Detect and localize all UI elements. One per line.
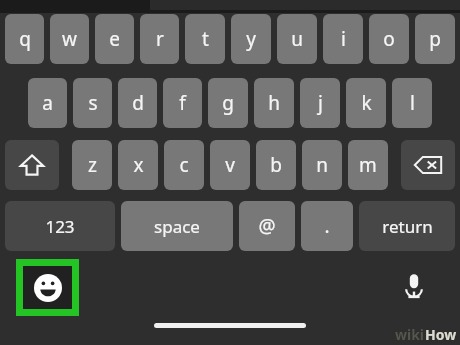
staticText: k <box>361 90 372 116</box>
staticText: h <box>268 90 280 116</box>
button[interactable]: Shift <box>5 140 59 190</box>
staticText: c <box>179 152 189 178</box>
button[interactable]: f <box>163 78 202 128</box>
button[interactable]: Voice input <box>392 264 436 308</box>
staticText: l <box>410 90 415 116</box>
staticText: n <box>316 152 328 178</box>
button[interactable]: Backspace <box>401 140 455 190</box>
staticText: x <box>133 152 144 178</box>
button[interactable]: w <box>50 14 89 64</box>
staticText: s <box>88 90 98 116</box>
staticText: e <box>109 26 120 52</box>
staticText: return <box>382 215 433 238</box>
staticText: y <box>246 26 256 52</box>
staticText: . <box>324 213 330 239</box>
staticText: d <box>132 90 144 116</box>
staticText: g <box>222 90 234 116</box>
staticText: b <box>270 152 282 178</box>
button[interactable]: Emoji keyboard <box>16 259 79 316</box>
button[interactable]: a <box>28 78 67 128</box>
staticText: a <box>42 90 53 116</box>
button[interactable]: c <box>164 140 204 190</box>
button[interactable]: t <box>185 14 225 64</box>
button[interactable]: y <box>231 14 271 64</box>
staticText: m <box>359 152 377 178</box>
staticText: 123 <box>45 215 75 238</box>
button[interactable]: return <box>359 201 455 251</box>
button[interactable]: . <box>301 201 353 251</box>
staticText: p <box>429 26 441 52</box>
staticText: z <box>88 152 97 178</box>
button[interactable]: @ <box>239 201 295 251</box>
staticText: space <box>154 215 200 238</box>
staticText: How <box>425 325 457 344</box>
button[interactable]: u <box>277 14 317 64</box>
button[interactable]: d <box>118 78 157 128</box>
staticText: t <box>202 26 209 52</box>
button[interactable]: space <box>121 201 233 251</box>
staticText: @ <box>258 213 276 239</box>
button[interactable]: k <box>346 78 386 128</box>
button[interactable]: q <box>5 14 44 64</box>
button[interactable]: 123 <box>5 201 115 251</box>
button[interactable]: p <box>415 14 455 64</box>
button[interactable]: j <box>300 78 340 128</box>
button[interactable]: o <box>369 14 409 64</box>
button[interactable]: h <box>254 78 294 128</box>
staticText: wiki <box>395 325 425 344</box>
button[interactable]: g <box>208 78 248 128</box>
button[interactable]: b <box>256 140 296 190</box>
button[interactable]: e <box>95 14 134 64</box>
button[interactable]: n <box>302 140 342 190</box>
staticText: f <box>179 90 186 116</box>
staticText: q <box>19 26 31 52</box>
staticText: r <box>156 26 164 52</box>
button[interactable]: x <box>118 140 158 190</box>
button[interactable]: v <box>210 140 250 190</box>
staticText: u <box>291 26 303 52</box>
button[interactable]: i <box>323 14 363 64</box>
staticText: j <box>318 90 323 116</box>
button[interactable]: r <box>140 14 179 64</box>
staticText: i <box>341 26 346 52</box>
button[interactable]: l <box>392 78 432 128</box>
button[interactable]: s <box>73 78 112 128</box>
staticText: v <box>225 152 235 178</box>
staticText: o <box>383 26 395 52</box>
button[interactable]: z <box>72 140 112 190</box>
staticText: w <box>62 26 77 52</box>
button[interactable]: m <box>348 140 388 190</box>
